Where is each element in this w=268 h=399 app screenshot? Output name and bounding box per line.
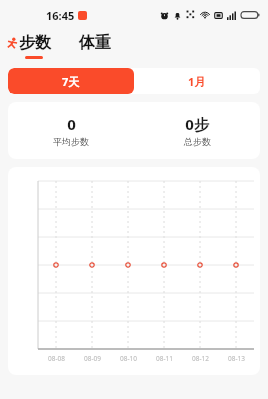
- staticText: 0: [67, 114, 76, 134]
- staticText: 08-08: [48, 354, 65, 363]
- staticText: 0步: [185, 114, 209, 134]
- staticText: 08-09: [84, 354, 101, 363]
- staticText: 体重: [79, 33, 111, 53]
- button[interactable]: 0: [8, 102, 260, 159]
- staticText: 08-11: [156, 354, 173, 363]
- staticText: 08-12: [192, 354, 209, 363]
- staticText: 步数: [19, 33, 51, 53]
- staticText: 平均步数: [53, 136, 89, 147]
- button[interactable]: 体重: [79, 33, 111, 59]
- staticText: 总步数: [184, 136, 211, 147]
- staticText: 1月: [188, 74, 206, 89]
- button[interactable]: 1月: [134, 68, 260, 94]
- button[interactable]: 7天: [8, 68, 134, 94]
- staticText: 08-10: [120, 354, 137, 363]
- staticText: 08-13: [228, 354, 245, 363]
- staticText: 7天: [62, 74, 80, 89]
- button[interactable]: 步数: [6, 33, 51, 59]
- staticText: 16:45: [46, 8, 75, 23]
